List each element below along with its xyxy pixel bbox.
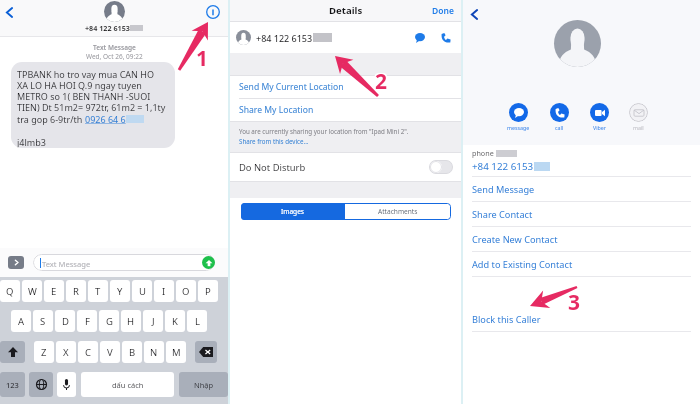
button[interactable]: S — [33, 310, 53, 332]
staticText: I — [162, 285, 166, 298]
staticText: 3 — [567, 289, 580, 313]
button[interactable]: Attachments — [345, 203, 451, 220]
button[interactable]: H — [121, 310, 141, 332]
staticText: B — [129, 346, 136, 359]
staticText: Z — [41, 346, 47, 359]
button[interactable]: T — [88, 280, 108, 302]
button[interactable]: Numbers — [0, 372, 25, 397]
button[interactable]: E — [44, 280, 64, 302]
staticText: j4lmb3 — [17, 136, 46, 148]
staticText: G — [106, 315, 113, 328]
staticText: 1 — [195, 44, 208, 68]
staticText: H — [127, 315, 135, 328]
staticText: Q — [6, 285, 14, 298]
button[interactable]: Dictate — [57, 372, 76, 397]
staticText: T — [95, 285, 101, 298]
button[interactable]: M — [166, 341, 186, 363]
button[interactable]: Enter — [179, 372, 228, 397]
staticText: R — [73, 285, 79, 298]
staticText: Images — [281, 207, 305, 216]
button[interactable]: Send — [202, 256, 215, 269]
button[interactable]: Back — [0, 3, 18, 21]
button[interactable]: F — [77, 310, 97, 332]
button[interactable]: Y — [110, 280, 130, 302]
staticText: F — [85, 315, 90, 328]
staticText: 1 — [196, 44, 209, 68]
button[interactable]: Done — [430, 3, 456, 19]
button[interactable]: A — [11, 310, 31, 332]
button[interactable]: Block this Caller — [463, 307, 700, 331]
button[interactable]: mail — [629, 103, 648, 131]
staticText: D — [62, 315, 69, 328]
staticText: phone — [472, 148, 494, 158]
button[interactable]: Add to Existing Contact — [463, 252, 700, 276]
button[interactable]: Z — [34, 341, 54, 363]
staticText: Y — [117, 285, 123, 298]
staticText: 1 — [196, 43, 209, 67]
staticText: Nhập — [194, 380, 214, 390]
button[interactable]: Do Not Disturb — [230, 153, 461, 181]
staticText: Details — [329, 4, 363, 17]
button[interactable]: B — [122, 341, 142, 363]
button[interactable]: Share Contact — [463, 202, 700, 226]
staticText: +84 122 6153 — [472, 160, 534, 173]
staticText: 2 — [374, 66, 387, 90]
button[interactable]: C — [78, 341, 98, 363]
button[interactable]: P — [198, 280, 218, 302]
button[interactable]: G — [99, 310, 119, 332]
button[interactable]: Send My Current Location — [230, 76, 461, 98]
button[interactable]: Space — [81, 372, 174, 397]
staticText: Share Contact — [472, 208, 533, 221]
staticText: Attachments — [378, 207, 418, 216]
button[interactable]: message — [507, 103, 530, 131]
button[interactable]: +84 122 6153 — [230, 22, 461, 53]
staticText: Text Message — [93, 43, 136, 52]
button[interactable]: Shift — [0, 341, 25, 363]
button[interactable]: App drawer — [8, 256, 24, 269]
staticText: S — [40, 315, 46, 328]
button[interactable]: Back — [464, 4, 484, 24]
staticText: W — [28, 285, 37, 298]
button[interactable]: Message — [413, 31, 427, 45]
staticText: Text Message — [42, 259, 91, 269]
staticText: J — [152, 315, 155, 328]
button[interactable]: V — [100, 341, 120, 363]
button[interactable]: Send Message — [463, 177, 700, 201]
staticText: +84 122 6153 — [256, 32, 313, 44]
button[interactable]: O — [176, 280, 196, 302]
button[interactable]: Viber — [590, 103, 609, 131]
button[interactable]: Call — [439, 31, 453, 45]
button[interactable]: Q — [0, 280, 20, 302]
button[interactable]: R — [66, 280, 86, 302]
button[interactable]: Text Message — [33, 254, 215, 271]
button[interactable]: U — [132, 280, 152, 302]
button[interactable]: Share My Location — [230, 99, 461, 121]
staticText: O — [182, 285, 190, 298]
button[interactable]: J — [143, 310, 163, 332]
staticText: P — [205, 285, 211, 298]
staticText: Wed, Oct 26, 09:22 — [86, 52, 143, 61]
button[interactable]: K — [165, 310, 185, 332]
staticText: N — [150, 346, 158, 359]
button[interactable]: N — [144, 341, 164, 363]
button[interactable]: TPBANK ho tro vay mua CAN HO XA LO HA HO… — [11, 62, 175, 148]
button[interactable]: Delete — [195, 341, 217, 363]
button[interactable]: I — [154, 280, 174, 302]
button[interactable]: Create New Contact — [463, 227, 700, 251]
button[interactable]: call — [550, 103, 569, 131]
staticText: 3 — [567, 287, 580, 311]
staticText: 2 — [376, 66, 389, 90]
button[interactable]: D — [55, 310, 75, 332]
button[interactable]: X — [56, 341, 76, 363]
staticText: 3 — [568, 288, 581, 312]
staticText: Block this Caller — [472, 313, 541, 326]
staticText: 2 — [376, 67, 389, 91]
button[interactable]: W — [22, 280, 42, 302]
button[interactable]: Emoji — [29, 372, 53, 397]
staticText: K — [172, 315, 178, 328]
staticText: X — [63, 346, 69, 359]
button[interactable]: Images — [241, 203, 345, 220]
staticText: 2 — [376, 68, 389, 92]
button[interactable]: Info — [203, 2, 223, 22]
button[interactable]: L — [187, 310, 207, 332]
